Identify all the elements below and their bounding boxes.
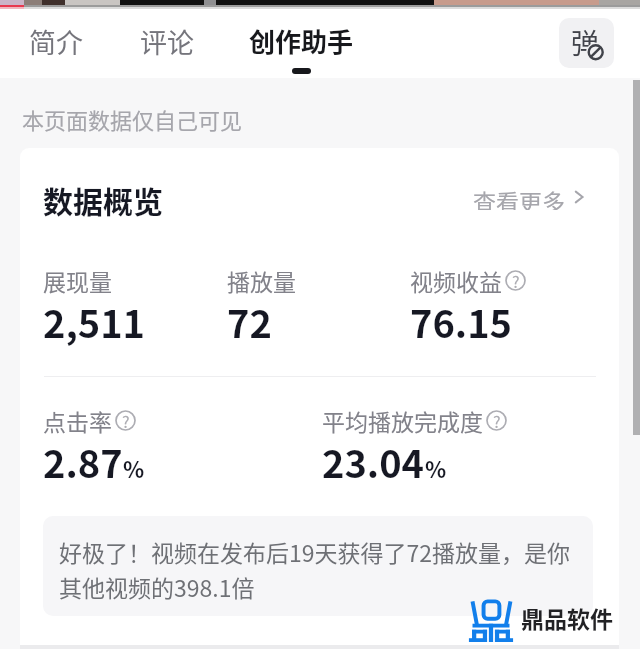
staticText: 平均播放完成度 <box>322 404 483 437</box>
button[interactable]: 简介 <box>29 9 83 61</box>
button[interactable]: 创作助手 <box>249 9 354 74</box>
staticText: 简介 <box>29 22 83 61</box>
staticText: 点击率 <box>43 404 112 437</box>
staticText: 好极了！视频在发布后19天获得了72播放量，是你其他视频的398.1倍 <box>59 535 576 604</box>
staticText: 本页面数据仅自己可见 <box>22 103 243 135</box>
staticText: 鼎品软件 <box>521 601 613 634</box>
staticText: 播放量 <box>227 264 296 297</box>
staticText: 评论 <box>140 22 194 61</box>
staticText: 76.15 <box>410 294 513 349</box>
staticText: 2.87 <box>43 434 123 489</box>
staticText: ? <box>512 269 520 290</box>
staticText: 弹 <box>571 22 600 63</box>
staticText: ? <box>493 409 501 430</box>
staticText: 23.04 <box>322 434 425 489</box>
button[interactable]: 查看更多 <box>473 184 588 210</box>
staticText: 展现量 <box>43 264 112 297</box>
staticText: % <box>425 452 447 484</box>
staticText: % <box>123 452 145 484</box>
staticText: 数据概览 <box>43 178 163 221</box>
staticText: 2,511 <box>43 294 146 349</box>
staticText: 创作助手 <box>249 22 354 60</box>
staticText: 查看更多 <box>473 184 565 210</box>
button[interactable]: 关闭弹幕 <box>559 18 614 68</box>
button[interactable]: 评论 <box>140 9 194 61</box>
staticText: 视频收益 <box>410 264 502 297</box>
staticText: 72 <box>227 294 272 349</box>
staticText: ? <box>122 409 130 430</box>
